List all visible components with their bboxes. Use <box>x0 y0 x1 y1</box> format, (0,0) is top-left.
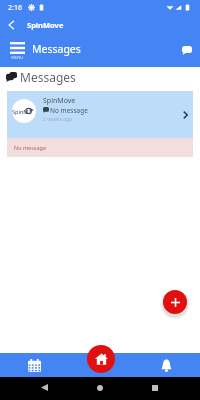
staticText: Messages <box>20 69 76 85</box>
staticText: SpinMove <box>43 96 76 106</box>
staticText: 2:16 <box>8 3 22 13</box>
button[interactable]: Home <box>87 345 115 373</box>
button[interactable]: Calendar <box>20 353 49 377</box>
button[interactable]: SpinM <box>7 91 193 138</box>
button[interactable]: Menu <box>10 42 25 61</box>
button[interactable]: Back <box>1 15 21 35</box>
staticText: SpinMove <box>27 20 64 30</box>
staticText: No message <box>14 144 47 151</box>
button[interactable]: Add <box>163 290 187 314</box>
staticText: No message <box>50 106 88 115</box>
staticText: SpinM <box>12 108 29 115</box>
staticText: Messages <box>32 42 81 56</box>
button[interactable]: Chat <box>178 41 196 59</box>
staticText: MENU <box>11 55 24 61</box>
staticText: 2 weeks ago <box>43 116 73 123</box>
button[interactable]: Notifications <box>151 353 181 377</box>
